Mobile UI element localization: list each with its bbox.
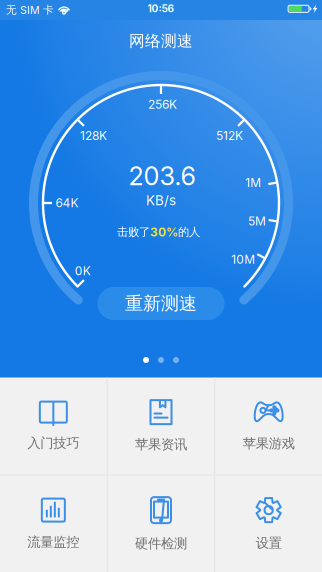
staticText: 256K — [148, 97, 177, 111]
staticText: 硬件检测 — [135, 535, 187, 552]
button[interactable]: 苹果游戏 — [215, 377, 322, 474]
staticText: 流量监控 — [27, 534, 79, 550]
staticText: 5M — [248, 214, 266, 228]
button[interactable]: 流量监控 — [0, 475, 107, 572]
staticText: 0K — [75, 263, 91, 278]
staticText: 的人 — [178, 225, 200, 239]
staticText: 1M — [245, 175, 261, 190]
button[interactable]: 设置 — [215, 475, 322, 572]
staticText: 30% — [150, 225, 178, 239]
button[interactable]: 重新测速 — [97, 287, 224, 320]
staticText: 重新测速 — [125, 292, 197, 315]
staticText: 203.6 — [128, 161, 195, 191]
staticText: 512K — [216, 128, 243, 143]
staticText: 设置 — [256, 535, 282, 551]
staticText: 网络测速 — [129, 31, 193, 51]
staticText: 10:56 — [147, 3, 173, 15]
staticText: 64K — [55, 195, 78, 210]
staticText: 10M — [231, 252, 255, 267]
staticText: 入门技巧 — [27, 435, 79, 451]
button[interactable]: 硬件检测 — [108, 475, 214, 572]
staticText: 击败了 — [117, 225, 150, 239]
staticText: 苹果游戏 — [243, 435, 295, 452]
staticText: KB/s — [146, 192, 176, 208]
staticText: 无 SIM 卡 — [6, 3, 54, 17]
staticText: 苹果资讯 — [135, 436, 187, 453]
button[interactable]: 入门技巧 — [0, 377, 107, 474]
staticText: 128K — [80, 128, 107, 143]
button[interactable]: 苹果资讯 — [108, 377, 214, 474]
